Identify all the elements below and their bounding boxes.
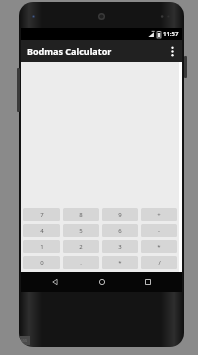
button[interactable]: More options	[162, 40, 182, 62]
button[interactable]: 4	[23, 224, 60, 237]
staticText: 2	[79, 243, 83, 251]
button[interactable]: 9	[102, 208, 138, 221]
button[interactable]: 2	[63, 240, 99, 253]
staticText: 6	[118, 227, 122, 235]
button[interactable]: 3	[102, 240, 138, 253]
staticText: *	[157, 243, 161, 251]
button[interactable]: Recent apps	[136, 272, 160, 292]
button[interactable]: *	[141, 240, 177, 253]
staticText: 9	[118, 211, 122, 219]
button[interactable]: /	[141, 256, 177, 269]
staticText: 5	[79, 227, 83, 235]
staticText: 1	[40, 243, 44, 251]
button[interactable]: 1	[23, 240, 60, 253]
staticText: /	[158, 259, 161, 267]
button[interactable]: 6	[102, 224, 138, 237]
staticText: 8	[79, 211, 83, 219]
staticText: Bodmas	[19, 337, 28, 344]
staticText: 7	[40, 211, 44, 219]
staticText: *	[118, 259, 122, 267]
button[interactable]: 8	[63, 208, 99, 221]
button[interactable]: Back	[43, 272, 67, 292]
staticText: 3	[118, 243, 122, 251]
staticText: Bodmas Calculator	[27, 45, 112, 57]
button[interactable]: 5	[63, 224, 99, 237]
button[interactable]: +	[141, 208, 177, 221]
staticText: .	[80, 259, 82, 267]
staticText: -	[158, 227, 160, 235]
staticText: +	[157, 211, 161, 219]
button[interactable]: *	[102, 256, 138, 269]
button[interactable]: 7	[23, 208, 60, 221]
staticText: 0	[40, 259, 44, 267]
staticText: 4	[40, 227, 44, 235]
button[interactable]: 0	[23, 256, 60, 269]
staticText: 11:57	[163, 30, 179, 38]
button[interactable]: Home	[90, 272, 114, 292]
